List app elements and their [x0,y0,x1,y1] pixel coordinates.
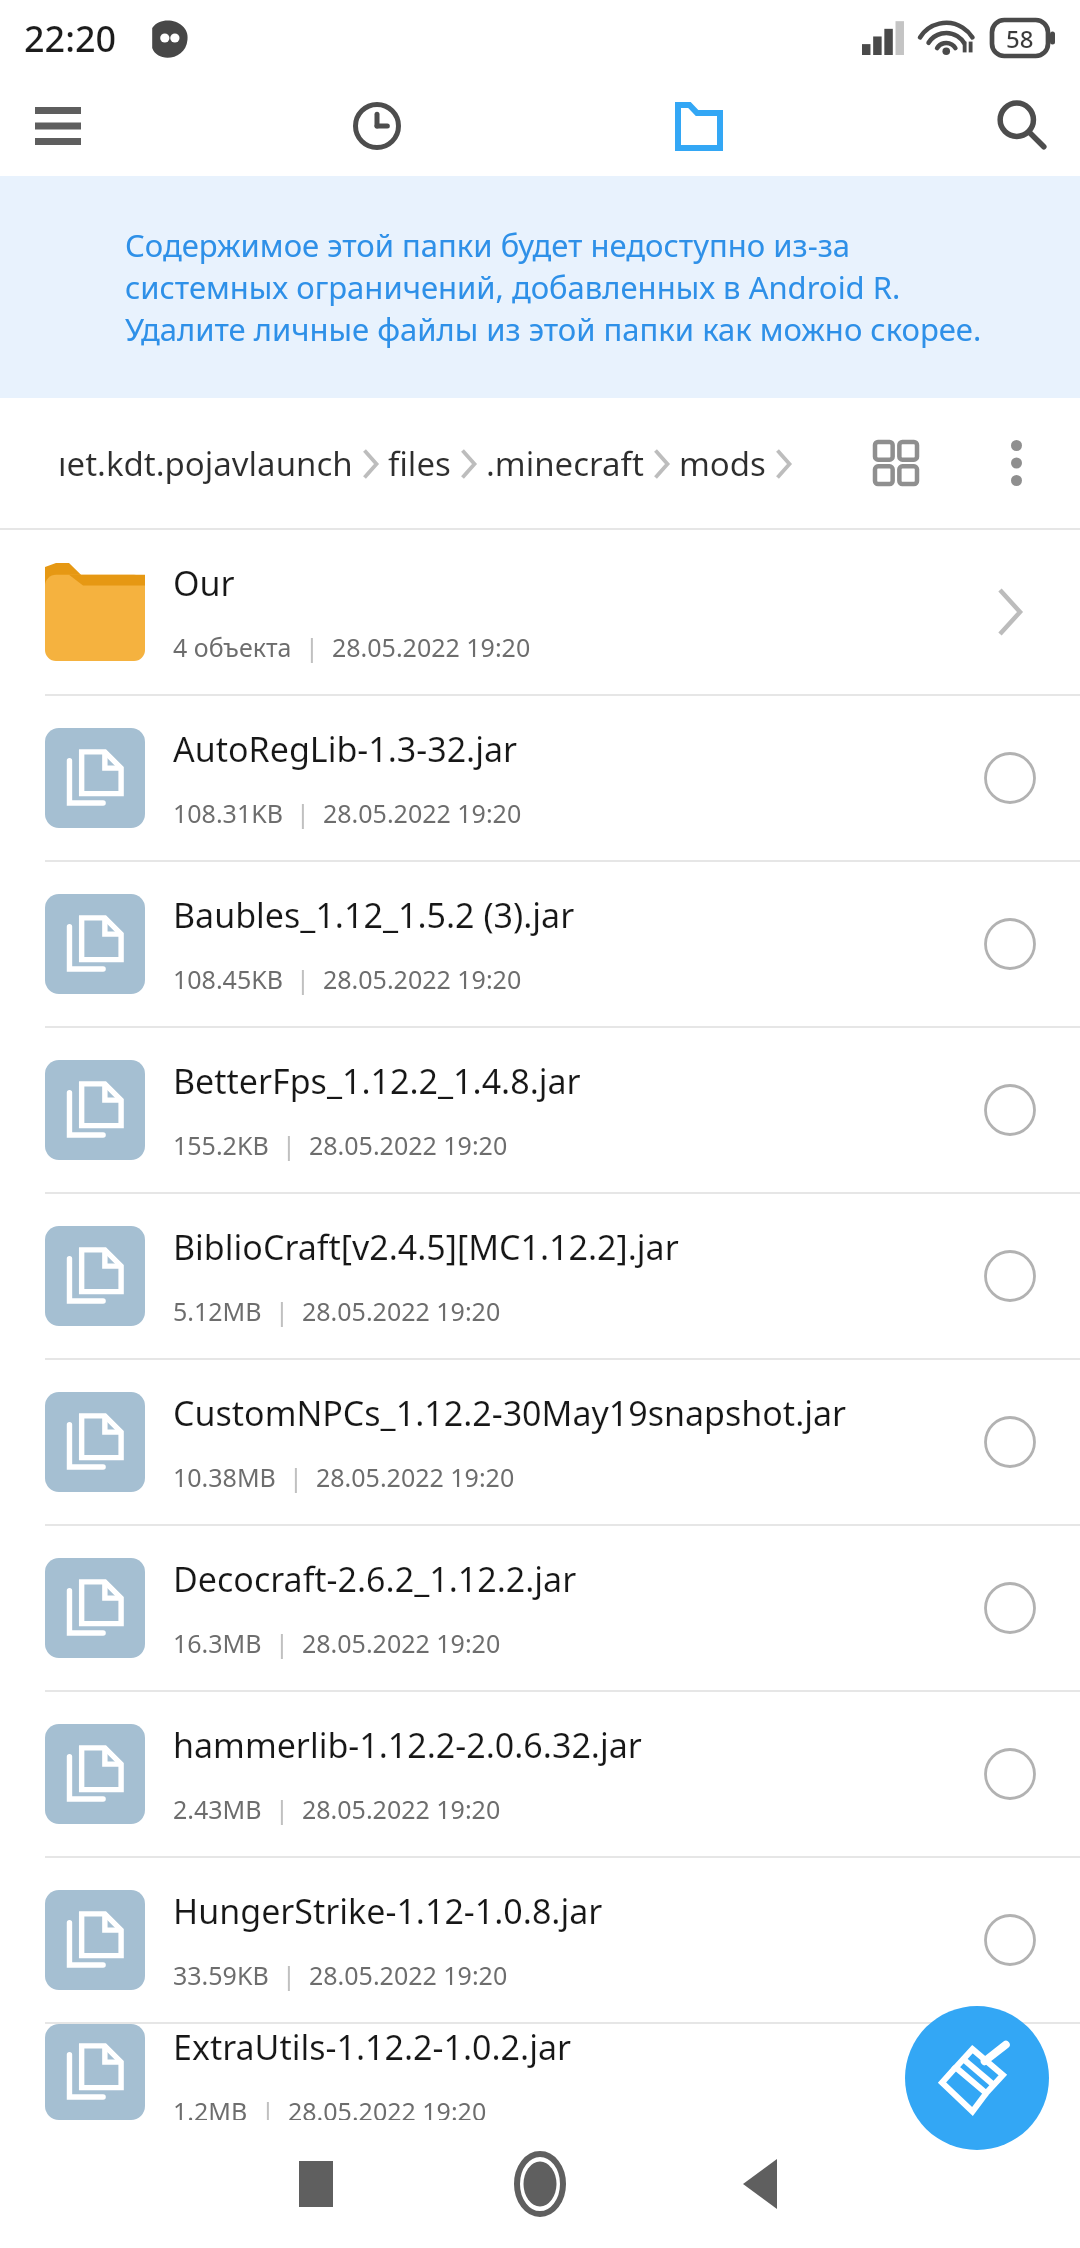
button[interactable]: mods [679,441,766,486]
staticText: 28.05.2022 19:20 [288,2094,487,2120]
staticText: 2.43MB [173,1792,262,1826]
staticText: Удалите личные файлы из этой папки как м… [125,308,982,350]
button[interactable]: ıet.kdt.pojavlaunch [58,441,353,486]
button[interactable]: Back [712,2136,808,2232]
staticText: mods [679,441,766,486]
staticText: Содержимое этой папки будет недоступно и… [125,224,851,266]
staticText: | [269,1958,309,1992]
staticText: 58 [1006,22,1034,55]
button[interactable]: Select file [940,1028,1080,1192]
staticText: BiblioCraft[v2.4.5][MC1.12.2].jar [173,1224,679,1270]
staticText: 1.2MB [173,2094,248,2120]
staticText: 28.05.2022 19:20 [332,630,531,664]
button[interactable]: Home [492,2136,588,2232]
staticText: 155.2KB [173,1128,269,1162]
button[interactable]: Baubles_1.12_1.5.2 (3).jar [0,862,1080,1026]
button[interactable]: More options [976,423,1056,503]
button[interactable]: Menu [10,78,106,174]
staticText: | [283,962,323,996]
button[interactable]: Decocraft-2.6.2_1.12.2.jar [0,1526,1080,1690]
staticText: BetterFps_1.12.2_1.4.8.jar [173,1058,581,1104]
staticText: Our [173,560,235,606]
button[interactable]: AutoRegLib-1.3-32.jar [0,696,1080,860]
staticText: 4 объекта [173,630,292,664]
button[interactable]: Folders [652,79,746,173]
staticText: 108.45KB [173,962,283,996]
button[interactable]: Select file [940,2024,1080,2120]
staticText: CustomNPCs_1.12.2-30May19snapshot.jar [173,1390,847,1436]
button[interactable]: BetterFps_1.12.2_1.4.8.jar [0,1028,1080,1192]
staticText: ıet.kdt.pojavlaunch [58,441,353,486]
staticText: 28.05.2022 19:20 [302,1626,501,1660]
staticText: 16.3MB [173,1626,262,1660]
staticText: системных ограничений, добавленных в And… [125,266,901,308]
staticText: 28.05.2022 19:20 [302,1792,501,1826]
button[interactable]: CustomNPCs_1.12.2-30May19snapshot.jar [0,1360,1080,1524]
button[interactable]: Select file [940,1360,1080,1524]
button[interactable]: Grid view [856,423,936,503]
staticText: 5.12MB [173,1294,262,1328]
button[interactable]: .minecraft [486,441,644,486]
staticText: HungerStrike-1.12-1.0.8.jar [173,1888,603,1934]
button[interactable]: Select file [940,1526,1080,1690]
staticText: 28.05.2022 19:20 [302,1294,501,1328]
button[interactable]: Select file [940,1692,1080,1856]
button[interactable]: hammerlib-1.12.2-2.0.6.32.jar [0,1692,1080,1856]
button[interactable]: ExtraUtils-1.12.2-1.0.2.jar [0,2024,1080,2120]
staticText: | [269,1128,309,1162]
staticText: 28.05.2022 19:20 [309,1128,508,1162]
staticText: | [292,630,332,664]
button[interactable]: Our [0,530,1080,694]
button[interactable]: Clean junk files [905,2006,1049,2150]
staticText: 28.05.2022 19:20 [323,796,522,830]
staticText: | [276,1460,316,1494]
staticText: hammerlib-1.12.2-2.0.6.32.jar [173,1722,642,1768]
button[interactable]: Select file [940,696,1080,860]
button[interactable]: BiblioCraft[v2.4.5][MC1.12.2].jar [0,1194,1080,1358]
staticText: 10.38MB [173,1460,276,1494]
button[interactable]: Select file [940,1858,1080,2022]
button[interactable]: HungerStrike-1.12-1.0.8.jar [0,1858,1080,2022]
button[interactable]: Select file [940,862,1080,1026]
button[interactable]: Search [974,78,1070,174]
staticText: files [388,441,451,486]
staticText: 33.59KB [173,1958,269,1992]
staticText: .minecraft [486,441,644,486]
button[interactable]: Open folder [940,530,1080,694]
button[interactable]: files [388,441,451,486]
staticText: 22:20 [24,14,117,63]
staticText: | [262,1626,302,1660]
staticText: Decocraft-2.6.2_1.12.2.jar [173,1556,577,1602]
staticText: 28.05.2022 19:20 [323,962,522,996]
button[interactable]: Recent files [330,79,424,173]
staticText: | [248,2094,288,2120]
button[interactable]: Select file [940,1194,1080,1358]
staticText: | [262,1294,302,1328]
staticText: ExtraUtils-1.12.2-1.0.2.jar [173,2024,572,2070]
staticText: 28.05.2022 19:20 [316,1460,515,1494]
staticText: AutoRegLib-1.3-32.jar [173,726,518,772]
staticText: 28.05.2022 19:20 [309,1958,508,1992]
staticText: Baubles_1.12_1.5.2 (3).jar [173,892,575,938]
staticText: 108.31KB [173,796,283,830]
staticText: | [262,1792,302,1826]
staticText: | [283,796,323,830]
button[interactable]: Recents [268,2136,364,2232]
